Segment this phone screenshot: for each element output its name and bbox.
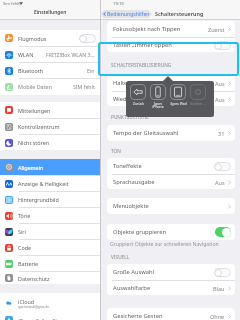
- other: Zurück: [130, 84, 146, 100]
- button[interactable]: Sprachausgabe: [107, 175, 235, 189]
- button[interactable]: Batterie: [0, 256, 100, 271]
- staticText: Gruppiert Objekte zur schnelleren Naviga…: [110, 241, 219, 248]
- button[interactable]: iCloud: [0, 293, 100, 313]
- staticText: Code: [18, 244, 100, 251]
- other: Suchen …: [190, 84, 206, 100]
- staticText: Mobile Daten: [18, 83, 73, 90]
- button[interactable]: Hintergrundbild: [0, 192, 100, 207]
- staticText: Mitteilungen: [18, 107, 100, 114]
- staticText: Suchen …: [190, 101, 206, 106]
- button[interactable]: Flugmodus: [0, 30, 100, 46]
- button[interactable]: Tempo der Gleitauswahl: [107, 125, 235, 141]
- staticText: TON: [111, 148, 121, 154]
- button[interactable]: Fokusobjekt nach Tippen: [107, 21, 235, 37]
- staticText: iCloud: [18, 298, 35, 305]
- button[interactable]: Code: [0, 240, 100, 255]
- staticText: SCHALTERSTABILISIERUNG: [111, 62, 172, 68]
- staticText: Kontrollzentrum: [18, 123, 100, 130]
- staticText: Anzeige & Helligkeit: [18, 180, 100, 187]
- staticText: Menüobjekte: [113, 202, 228, 210]
- other: Igors iPhone: [150, 84, 166, 100]
- staticText: Wiederholung ignorieren: [113, 95, 215, 103]
- staticText: igor.kmieski@gmx.de: [18, 305, 49, 309]
- staticText: Aus: [215, 96, 225, 103]
- button[interactable]: Toneffekte: [107, 158, 235, 174]
- staticText: Bluetooth: [18, 67, 87, 74]
- staticText: WLAN: [18, 51, 46, 58]
- staticText: Allgemein: [18, 164, 100, 171]
- other: Igors iPad: [170, 84, 186, 100]
- button[interactable]: iTunes & App Store: [0, 312, 100, 320]
- button[interactable]: Gesicherte Gesten: [107, 308, 235, 320]
- staticText: Igors iPhone: [152, 101, 164, 109]
- staticText: Ein: [87, 67, 95, 74]
- staticText: Blau: [213, 285, 225, 292]
- button[interactable]: Töne: [0, 208, 100, 223]
- staticText: Tasten „Immer tippen“: [113, 41, 214, 49]
- button[interactable]: Objekte gruppieren: [107, 224, 235, 240]
- staticText: VISUELL: [111, 254, 130, 260]
- staticText: Zurück: [133, 101, 144, 106]
- staticText: Datenschutz: [18, 275, 100, 282]
- button[interactable]: Suchen …: [188, 84, 208, 106]
- staticText: Igors iPad: [170, 101, 187, 106]
- staticText: Töne: [18, 212, 100, 219]
- button[interactable]: Mitteilungen: [0, 102, 100, 118]
- button[interactable]: WLAN: [0, 47, 100, 62]
- button[interactable]: Mobile Daten: [0, 79, 100, 94]
- staticText: Flugmodus: [18, 35, 79, 42]
- staticText: iTunes & App Store: [18, 317, 100, 320]
- button[interactable]: Siri: [0, 224, 100, 239]
- staticText: Nicht stören: [18, 139, 100, 146]
- staticText: 31: [218, 130, 225, 137]
- staticText: PUNKTSUCHSTIL: [111, 114, 149, 120]
- button[interactable]: Zurück: [128, 84, 148, 106]
- staticText: Einstellungen: [34, 9, 67, 16]
- staticText: Fokusobjekt nach Tippen: [113, 25, 208, 33]
- button[interactable]: Datenschutz: [0, 272, 100, 284]
- staticText: Aus: [215, 80, 225, 87]
- staticText: Ohne: [210, 313, 225, 320]
- staticText: Sprachausgabe: [113, 178, 215, 186]
- button[interactable]: Tasten „Immer tippen“: [107, 38, 235, 52]
- button[interactable]: Menüobjekte: [107, 198, 235, 214]
- button[interactable]: Haltedauer: [107, 75, 235, 91]
- staticText: Tempo der Gleitauswahl: [113, 129, 218, 137]
- button[interactable]: Nicht stören: [0, 135, 100, 150]
- staticText: Objekte gruppieren: [113, 228, 215, 236]
- staticText: Sim fehlt: [3, 1, 20, 6]
- button[interactable]: Igors iPad: [168, 84, 188, 106]
- staticText: Toneffekte: [113, 162, 214, 170]
- staticText: SIM fehlt: [73, 83, 95, 90]
- button[interactable]: Große Auswahl: [107, 264, 235, 280]
- button[interactable]: Anzeige & Helligkeit: [0, 176, 100, 191]
- staticText: Große Auswahl: [113, 268, 214, 276]
- button[interactable]: Kontrollzentrum: [0, 119, 100, 134]
- staticText: Schaltersteuerung: [155, 10, 204, 17]
- staticText: Batterie: [18, 260, 100, 267]
- staticText: Aus: [215, 179, 225, 186]
- button[interactable]: Allgemein: [0, 159, 100, 175]
- staticText: Auswahlfarbe: [113, 284, 213, 292]
- staticText: 19:19: [113, 1, 124, 7]
- staticText: FRITZ!Box WLAN 3…: [46, 51, 95, 58]
- staticText: Gesicherte Gesten: [113, 312, 210, 320]
- button[interactable]: Igors iPhone: [148, 84, 168, 109]
- staticText: Siri: [18, 228, 100, 235]
- staticText: Haltedauer: [113, 79, 215, 87]
- button[interactable]: Bluetooth: [0, 63, 100, 78]
- button[interactable]: Bedienungshilfen: [103, 10, 150, 17]
- button[interactable]: Auswahlfarbe: [107, 281, 235, 295]
- staticText: Hintergrundbild: [18, 196, 100, 203]
- staticText: Bedienungshilfen: [107, 10, 150, 17]
- staticText: Zuerst: [208, 26, 225, 33]
- button[interactable]: Wiederholung ignorieren: [107, 92, 235, 106]
